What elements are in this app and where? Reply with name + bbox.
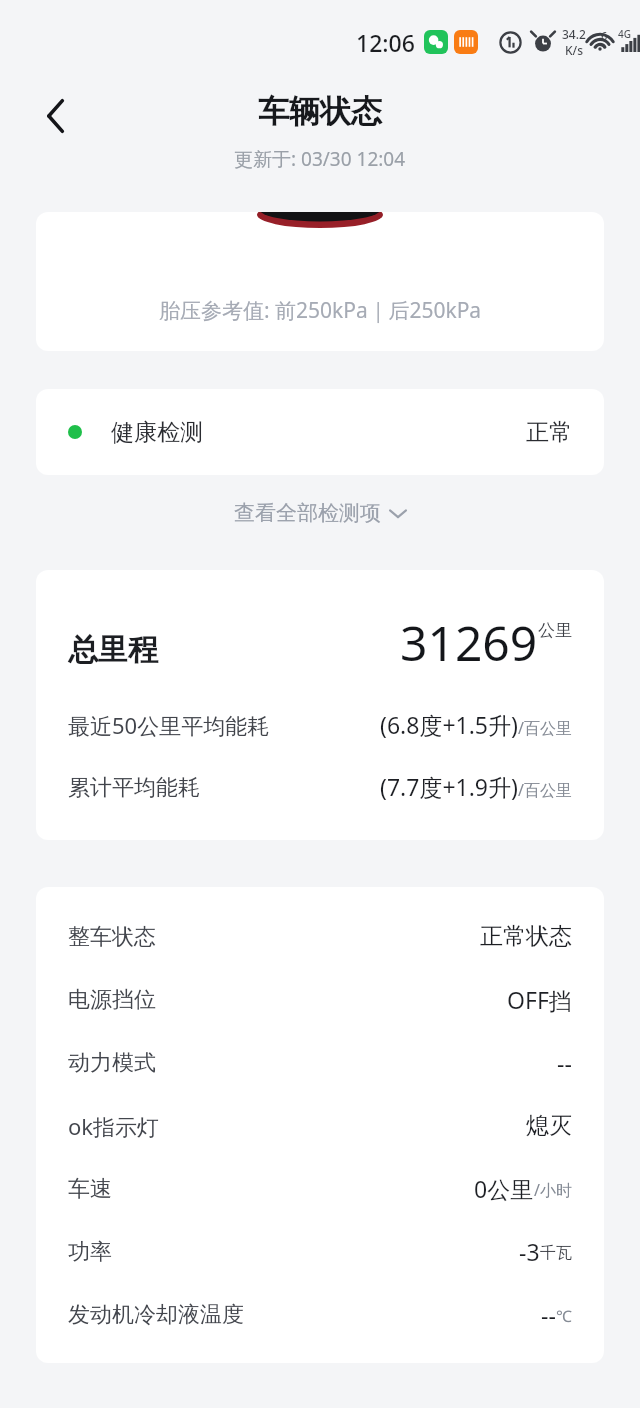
staticText: -- [557, 1047, 572, 1078]
staticText: 功率 [68, 1238, 112, 1266]
button[interactable]: 车速 [68, 1157, 572, 1220]
staticText: 查看全部检测项 [234, 500, 381, 526]
staticText: 车速 [68, 1175, 112, 1203]
button[interactable]: 功率 [68, 1220, 572, 1283]
staticText: 熄灭 [526, 1111, 572, 1140]
staticText: 4G [618, 27, 631, 41]
staticText: ℃ [556, 1305, 572, 1327]
staticText: -3 [519, 1236, 540, 1267]
staticText: /百公里 [518, 717, 572, 739]
staticText: 最近50公里平均能耗 [68, 710, 270, 740]
button[interactable]: 健康检测 [36, 389, 604, 475]
staticText: 发动机冷却液温度 [68, 1301, 244, 1329]
staticText: 12:06 [356, 27, 415, 58]
staticText: (6.8度+1.5升) [380, 709, 518, 740]
button[interactable]: 电源挡位 [68, 968, 572, 1031]
button[interactable]: 总里程 [36, 570, 604, 840]
staticText: 公里 [538, 620, 572, 641]
staticText: K/s [565, 42, 584, 58]
button[interactable]: 整车状态 [68, 905, 572, 968]
staticText: (7.7度+1.9升) [380, 771, 518, 802]
staticText: /百公里 [518, 779, 572, 801]
staticText: /小时 [534, 1179, 572, 1201]
staticText: 千瓦 [540, 1243, 572, 1263]
button[interactable]: Back [28, 88, 84, 144]
staticText: 累计平均能耗 [68, 774, 200, 802]
staticText: 整车状态 [68, 923, 156, 951]
staticText: 电源挡位 [68, 986, 156, 1014]
staticText: 6 [601, 28, 608, 43]
staticText: 动力模式 [68, 1049, 156, 1077]
staticText: 正常状态 [480, 922, 572, 951]
staticText: OFF挡 [507, 984, 572, 1015]
staticText: 总里程 [68, 631, 158, 669]
staticText: 胎压参考值: 前250kPa｜后250kPa [159, 296, 482, 325]
staticText: 31269 [400, 610, 538, 675]
staticText: -- [541, 1299, 556, 1330]
staticText: 更新于: 03/30 12:04 [234, 146, 406, 172]
button[interactable]: 动力模式 [68, 1031, 572, 1094]
button[interactable]: ok指示灯 [68, 1094, 572, 1157]
staticText: ok指示灯 [68, 1111, 160, 1141]
button[interactable]: 发动机冷却液温度 [68, 1283, 572, 1346]
staticText: 34.2 [562, 26, 586, 42]
staticText: 车辆状态 [258, 92, 382, 131]
staticText: 0公里 [474, 1173, 534, 1204]
staticText: 正常 [526, 418, 572, 447]
button[interactable]: 查看全部检测项 [222, 492, 418, 534]
staticText: 健康检测 [111, 418, 203, 447]
button[interactable]: 胎压参考值: 前250kPa｜后250kPa [36, 212, 604, 351]
